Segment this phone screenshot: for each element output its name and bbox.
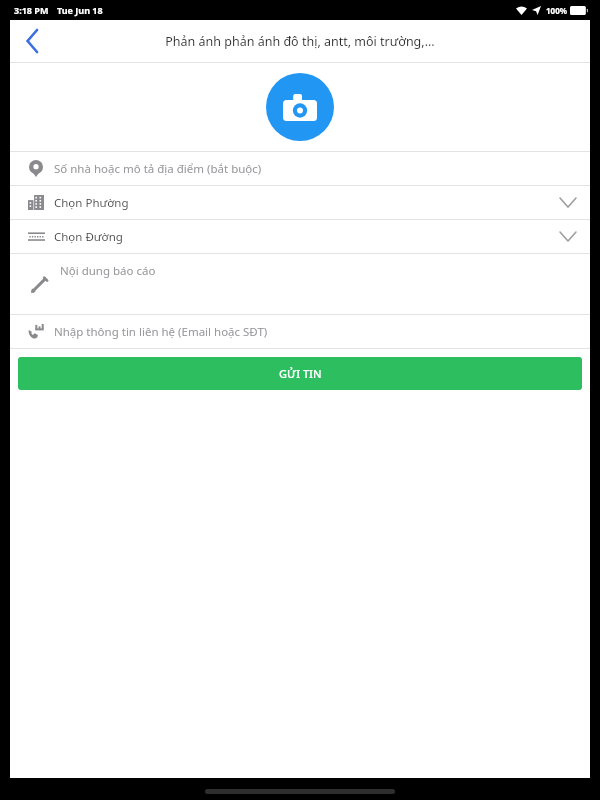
button[interactable]: Take photo xyxy=(266,73,334,141)
button[interactable]: Nội dung báo cáo xyxy=(10,254,590,314)
button[interactable]: Chọn Đường xyxy=(10,220,590,253)
button[interactable]: Nhập thông tin liên hệ (Email hoặc SĐT) xyxy=(10,315,590,348)
staticText: Chọn Đường xyxy=(54,229,123,245)
staticText: 3:18 PM xyxy=(14,4,49,16)
staticText: Chọn Phường xyxy=(54,195,129,211)
button[interactable]: Back xyxy=(10,20,54,62)
staticText: Nhập thông tin liên hệ (Email hoặc SĐT) xyxy=(54,324,268,340)
staticText: 100% xyxy=(546,5,567,16)
staticText: GỬI TIN xyxy=(279,366,322,381)
button[interactable]: GỬI TIN xyxy=(18,357,582,390)
button[interactable]: Chọn Phường xyxy=(10,186,590,219)
staticText: Tue Jun 18 xyxy=(57,4,103,16)
button[interactable]: Số nhà hoặc mô tả địa điểm (bắt buộc) xyxy=(10,152,590,185)
staticText: Số nhà hoặc mô tả địa điểm (bắt buộc) xyxy=(54,161,262,177)
staticText: Nội dung báo cáo xyxy=(60,263,156,279)
staticText: Phản ánh phản ánh đô thị, antt, môi trườ… xyxy=(165,33,435,50)
